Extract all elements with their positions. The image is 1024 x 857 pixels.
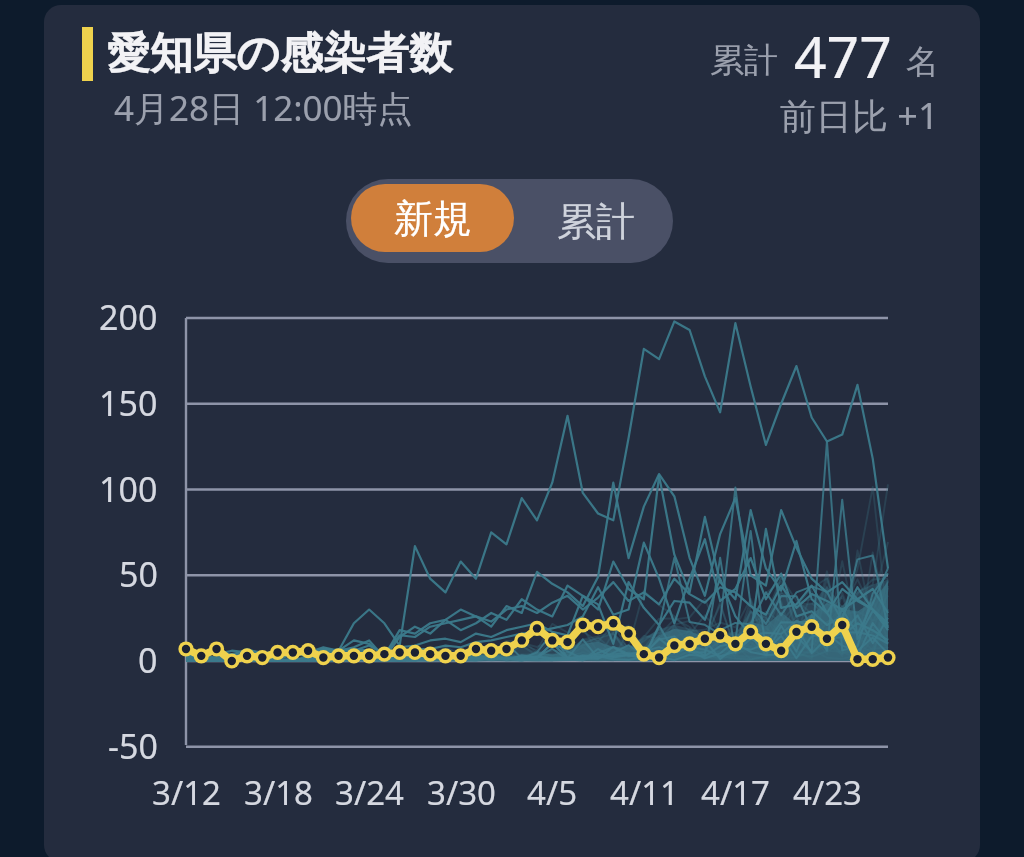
staticText: 4月28日 12:00時点	[114, 84, 413, 132]
staticText: 3/24	[335, 770, 404, 815]
staticText: 新規	[394, 194, 472, 243]
staticText: 3/30	[427, 770, 496, 815]
staticText: -50	[108, 723, 158, 769]
staticText: 4/23	[793, 770, 862, 815]
staticText: 4/11	[610, 770, 679, 815]
staticText: 50	[119, 551, 158, 597]
staticText: 累計	[710, 39, 778, 82]
staticText: 100	[99, 466, 158, 512]
staticText: 200	[99, 294, 158, 340]
staticText: 4/17	[701, 770, 770, 815]
staticText: 3/12	[152, 770, 221, 815]
staticText: 0	[138, 637, 158, 683]
staticText: 4/5	[527, 770, 578, 815]
staticText: 累計	[557, 197, 635, 246]
staticText: 477	[794, 17, 892, 91]
staticText: 150	[99, 380, 158, 426]
button[interactable]: 新規	[351, 184, 514, 252]
staticText: 名	[906, 41, 939, 83]
staticText: 愛知県の感染者数	[107, 27, 453, 81]
staticText: 3/18	[244, 770, 313, 815]
button[interactable]: 累計	[519, 179, 673, 263]
staticText: 前日比 +1	[780, 91, 939, 140]
